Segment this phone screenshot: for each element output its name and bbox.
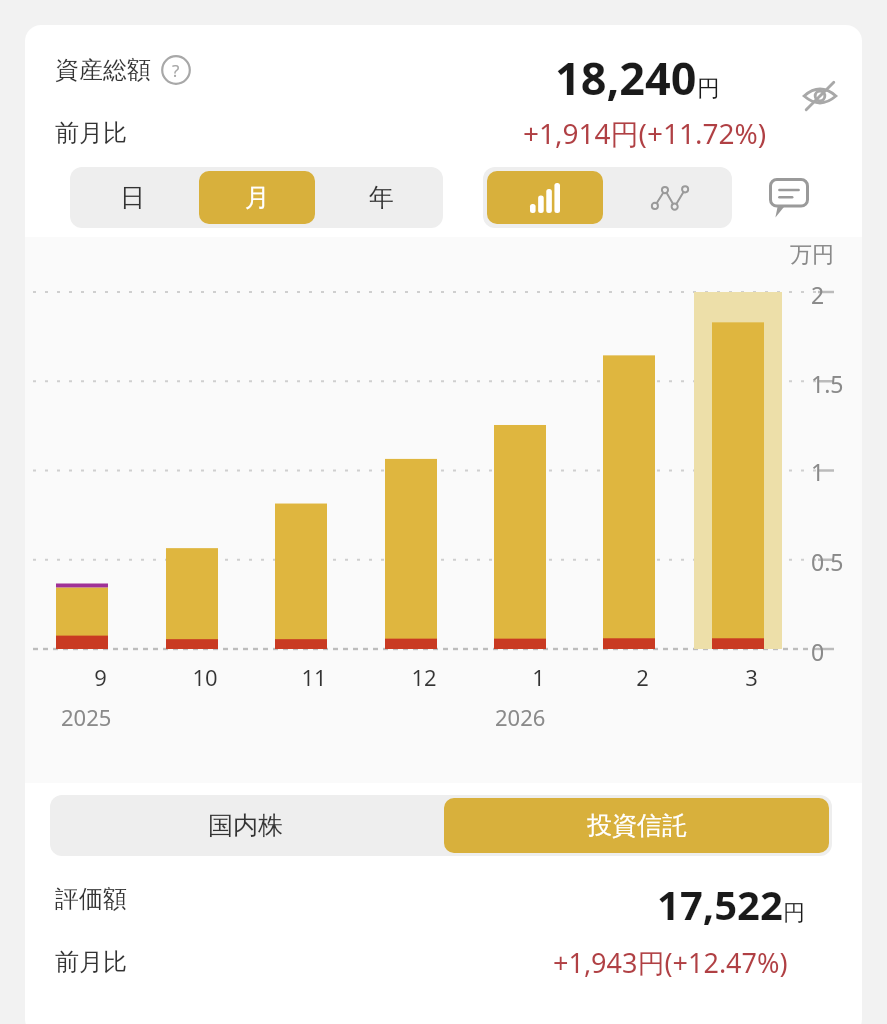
staticText: 17,522: [657, 877, 783, 931]
button[interactable]: 棒グラフ: [487, 171, 603, 224]
button[interactable]: 年: [323, 171, 439, 224]
staticText: +1,914円(+11.72%): [523, 114, 767, 152]
button[interactable]: 資産総額: [55, 55, 191, 85]
staticText: 11: [301, 662, 327, 692]
staticText: 9: [94, 662, 107, 692]
staticText: +1,943円(+12.47%): [553, 944, 788, 981]
staticText: 前月比: [55, 947, 127, 977]
staticText: 12: [411, 662, 437, 692]
button[interactable]: コメント: [763, 172, 815, 224]
staticText: 3: [745, 662, 758, 692]
staticText: 1: [811, 456, 825, 487]
staticText: 国内株: [208, 810, 283, 841]
staticText: 0.5: [811, 546, 844, 577]
staticText: 0: [811, 636, 825, 667]
staticText: 2025: [61, 702, 112, 732]
staticText: 18,240: [555, 47, 697, 108]
staticText: 資産総額: [55, 55, 151, 85]
staticText: 1: [532, 662, 545, 692]
button[interactable]: 金額を隠す: [797, 73, 843, 119]
staticText: 1.5: [811, 368, 844, 399]
staticText: 万円: [790, 241, 834, 269]
button[interactable]: 国内株: [53, 798, 438, 853]
button[interactable]: 日: [74, 171, 191, 224]
staticText: 10: [192, 662, 218, 692]
staticText: 年: [369, 182, 394, 213]
staticText: 2026: [495, 702, 546, 732]
button[interactable]: 折れ線グラフ: [607, 167, 732, 228]
staticText: 円: [783, 899, 805, 927]
staticText: ?: [172, 59, 180, 82]
button[interactable]: 月: [199, 171, 315, 224]
staticText: 日: [120, 182, 145, 213]
staticText: 2: [811, 279, 825, 310]
staticText: 月: [245, 182, 270, 213]
staticText: 投資信託: [587, 810, 687, 841]
staticText: 前月比: [55, 118, 127, 148]
button[interactable]: 投資信託: [444, 798, 829, 853]
staticText: 円: [697, 74, 720, 103]
staticText: 2: [636, 662, 649, 692]
staticText: 評価額: [55, 884, 127, 914]
